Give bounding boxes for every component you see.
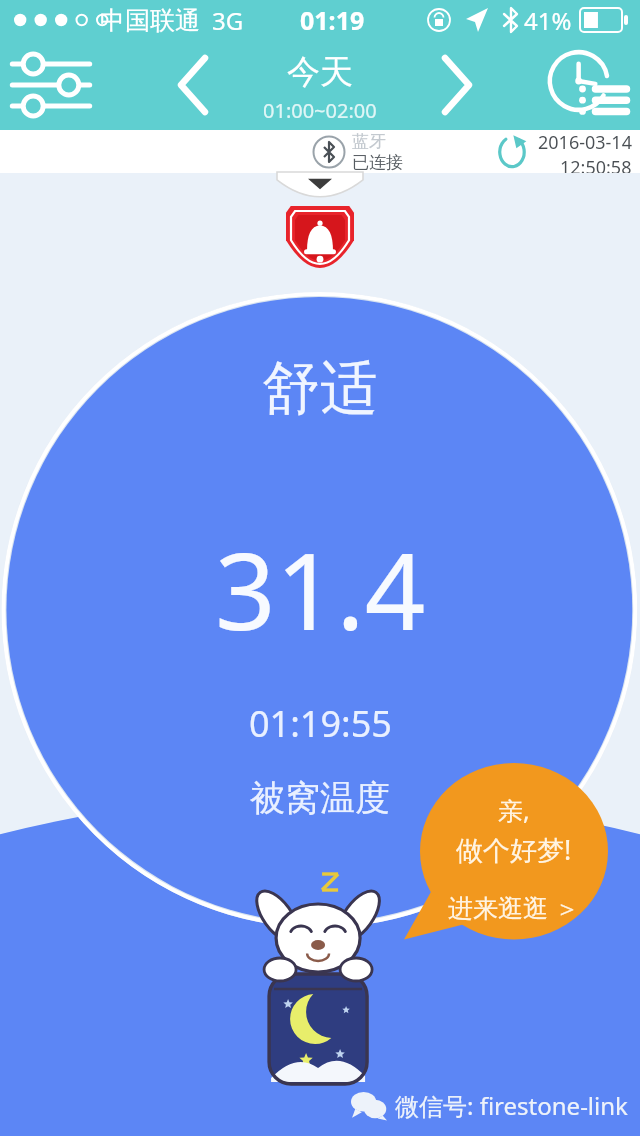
staticText: 做个好梦! <box>456 831 572 868</box>
button[interactable]: 亲, <box>404 763 610 959</box>
staticText: 今天 <box>287 51 353 93</box>
button[interactable]: Settings <box>8 50 94 120</box>
staticText: 01:00~02:00 <box>263 97 377 124</box>
staticText: 蓝牙 <box>352 131 386 152</box>
staticText: 01:19 <box>300 3 365 37</box>
staticText: 被窝温度 <box>250 776 390 820</box>
button[interactable]: Next day <box>425 50 487 120</box>
staticText: 01:19:55 <box>249 699 392 748</box>
staticText: 中国联通 <box>100 5 200 36</box>
staticText: 已连接 <box>352 152 403 173</box>
staticText: 12:50:58 <box>560 155 632 173</box>
staticText: 2016-03-14 <box>538 130 632 155</box>
button[interactable]: Previous day <box>163 50 225 120</box>
staticText: 31.4 <box>215 517 426 661</box>
button[interactable]: 微信号: firestone-link <box>351 1089 628 1122</box>
staticText: 亲, <box>498 793 530 827</box>
staticText: 进来逛逛 ＞ <box>448 890 580 924</box>
other: Sync <box>494 134 530 170</box>
staticText: 舒适 <box>262 352 378 425</box>
staticText: 3G <box>212 4 244 37</box>
button[interactable]: 蓝牙 <box>312 131 403 173</box>
button[interactable]: Sync <box>494 130 632 173</box>
staticText: 41% <box>524 4 572 37</box>
button[interactable]: 今天 <box>263 51 377 124</box>
staticText: 微信号: firestone-link <box>395 1089 628 1122</box>
button[interactable]: History <box>540 45 632 125</box>
button[interactable]: Alarm enabled <box>286 206 354 282</box>
